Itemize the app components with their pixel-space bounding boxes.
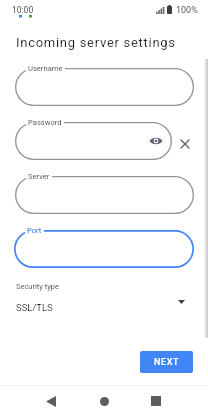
staticText: 10:00: [12, 5, 34, 15]
staticText: Port: [27, 226, 42, 235]
staticText: Server: [28, 172, 50, 181]
button[interactable]: Show password: [147, 132, 165, 150]
staticText: Incoming server settings: [16, 35, 176, 50]
staticText: Username: [28, 64, 63, 73]
button[interactable]: NEXT: [140, 351, 193, 373]
staticText: 100%: [176, 5, 198, 16]
button[interactable]: Clear password: [176, 135, 194, 153]
button[interactable]: Security type: [0, 278, 208, 320]
staticText: Password: [28, 118, 62, 127]
staticText: SSL/TLS: [16, 302, 53, 313]
button[interactable]: Server: [15, 176, 194, 214]
button[interactable]: Recent apps: [138, 386, 174, 416]
button[interactable]: Username: [15, 68, 194, 106]
staticText: NEXT: [154, 357, 180, 368]
button[interactable]: Back: [33, 386, 69, 416]
button[interactable]: Show password: [15, 122, 172, 160]
button[interactable]: Home: [86, 386, 122, 416]
button[interactable]: Port: [14, 230, 194, 268]
staticText: Security type: [16, 282, 59, 291]
